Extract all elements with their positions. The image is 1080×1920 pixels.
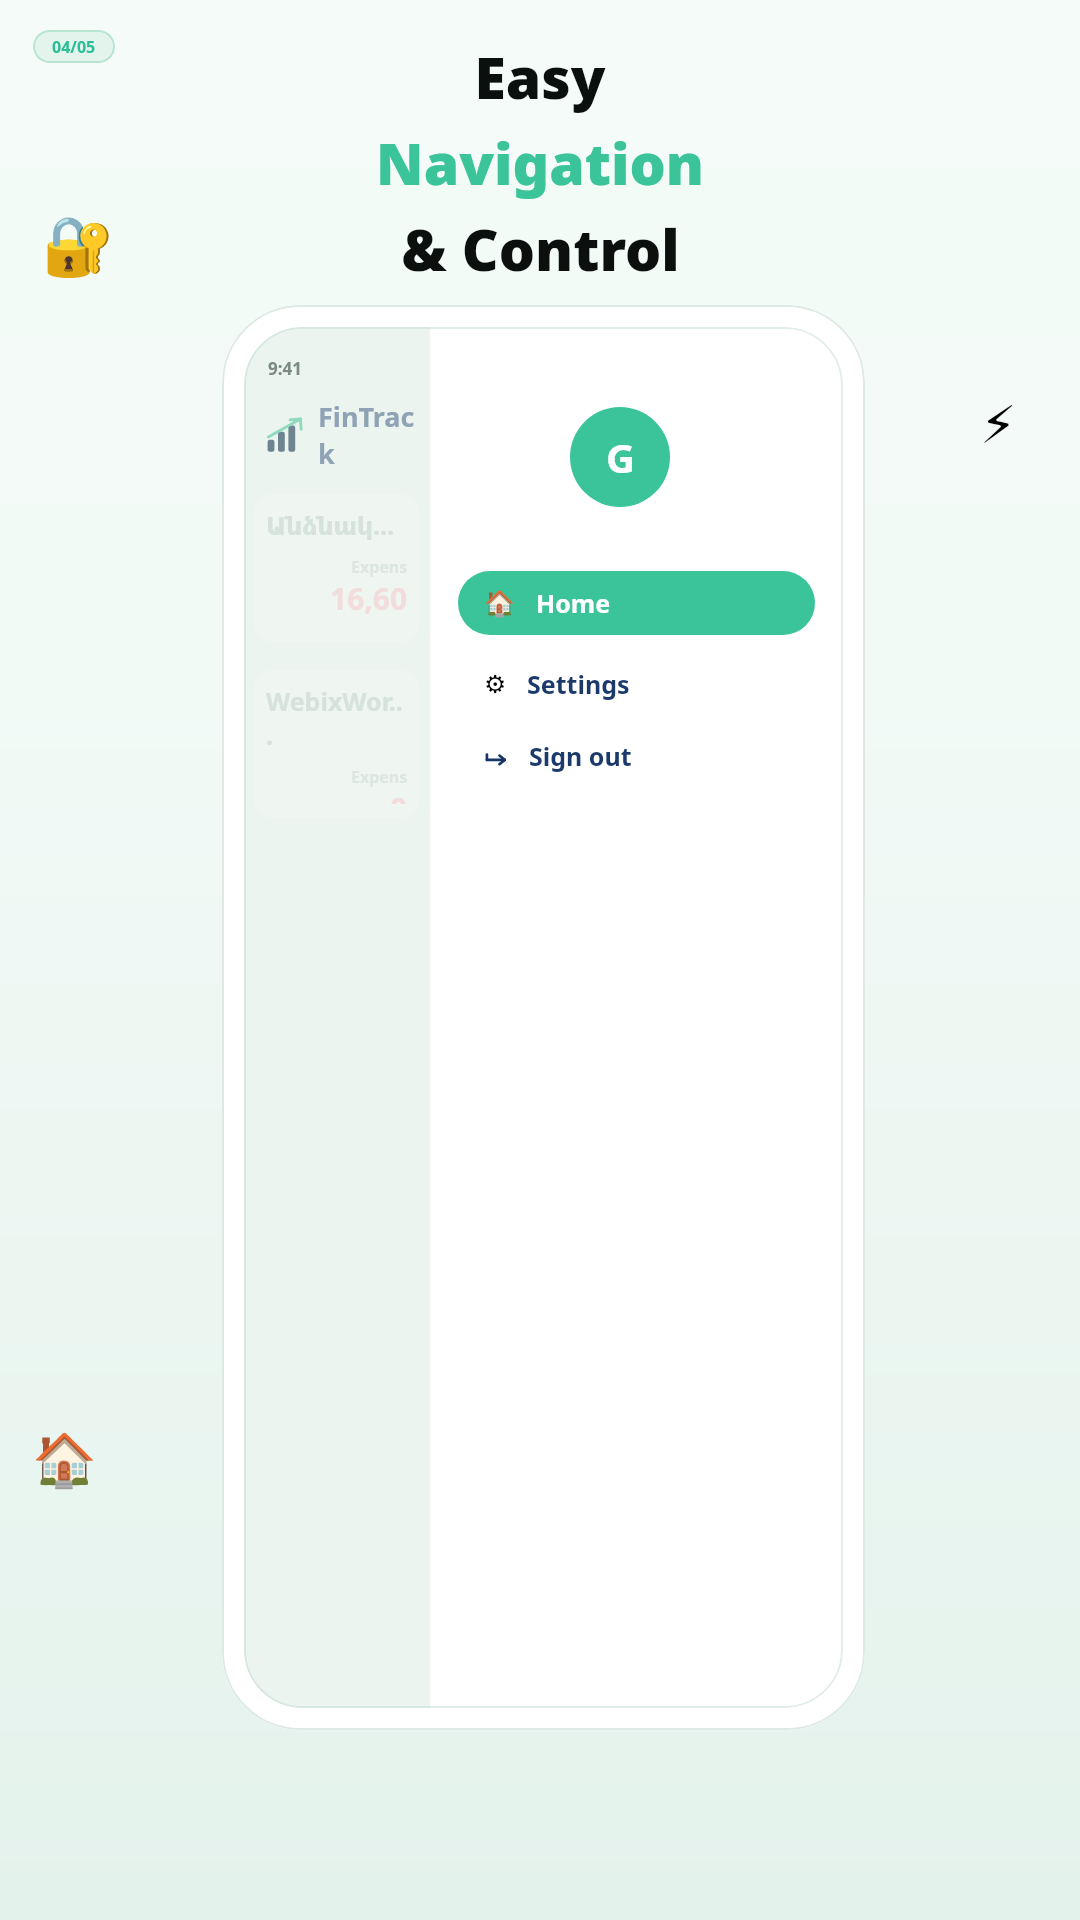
- staticText: G: [606, 430, 635, 484]
- staticText: Easy: [474, 38, 606, 116]
- button[interactable]: Profile: [570, 407, 670, 507]
- button[interactable]: 🏠: [458, 571, 815, 635]
- staticText: Անձնակ...: [266, 508, 395, 542]
- staticText: Settings: [527, 667, 630, 701]
- staticText: Navigation: [376, 124, 704, 202]
- staticText: FinTrack: [318, 398, 430, 472]
- staticText: 🔐: [42, 212, 115, 280]
- button[interactable]: Sign out: [458, 726, 815, 786]
- staticText: 16,60: [330, 578, 408, 619]
- staticText: & Control: [401, 210, 680, 288]
- staticText: 04/05: [52, 36, 96, 58]
- staticText: ⚡: [980, 395, 1017, 456]
- staticText: Expens: [351, 766, 408, 788]
- staticText: ⚙️: [484, 670, 507, 699]
- staticText: WebixWor...: [266, 684, 408, 752]
- staticText: Sign out: [529, 739, 632, 773]
- staticText: 🏠: [32, 1430, 97, 1491]
- staticText: Expens: [351, 556, 408, 578]
- button[interactable]: 04/05: [33, 30, 115, 63]
- staticText: 9:41: [268, 357, 302, 380]
- staticText: 🏠: [484, 589, 516, 618]
- staticText: 0: [390, 788, 408, 804]
- staticText: Home: [536, 586, 611, 620]
- button[interactable]: ⚙️: [458, 654, 815, 714]
